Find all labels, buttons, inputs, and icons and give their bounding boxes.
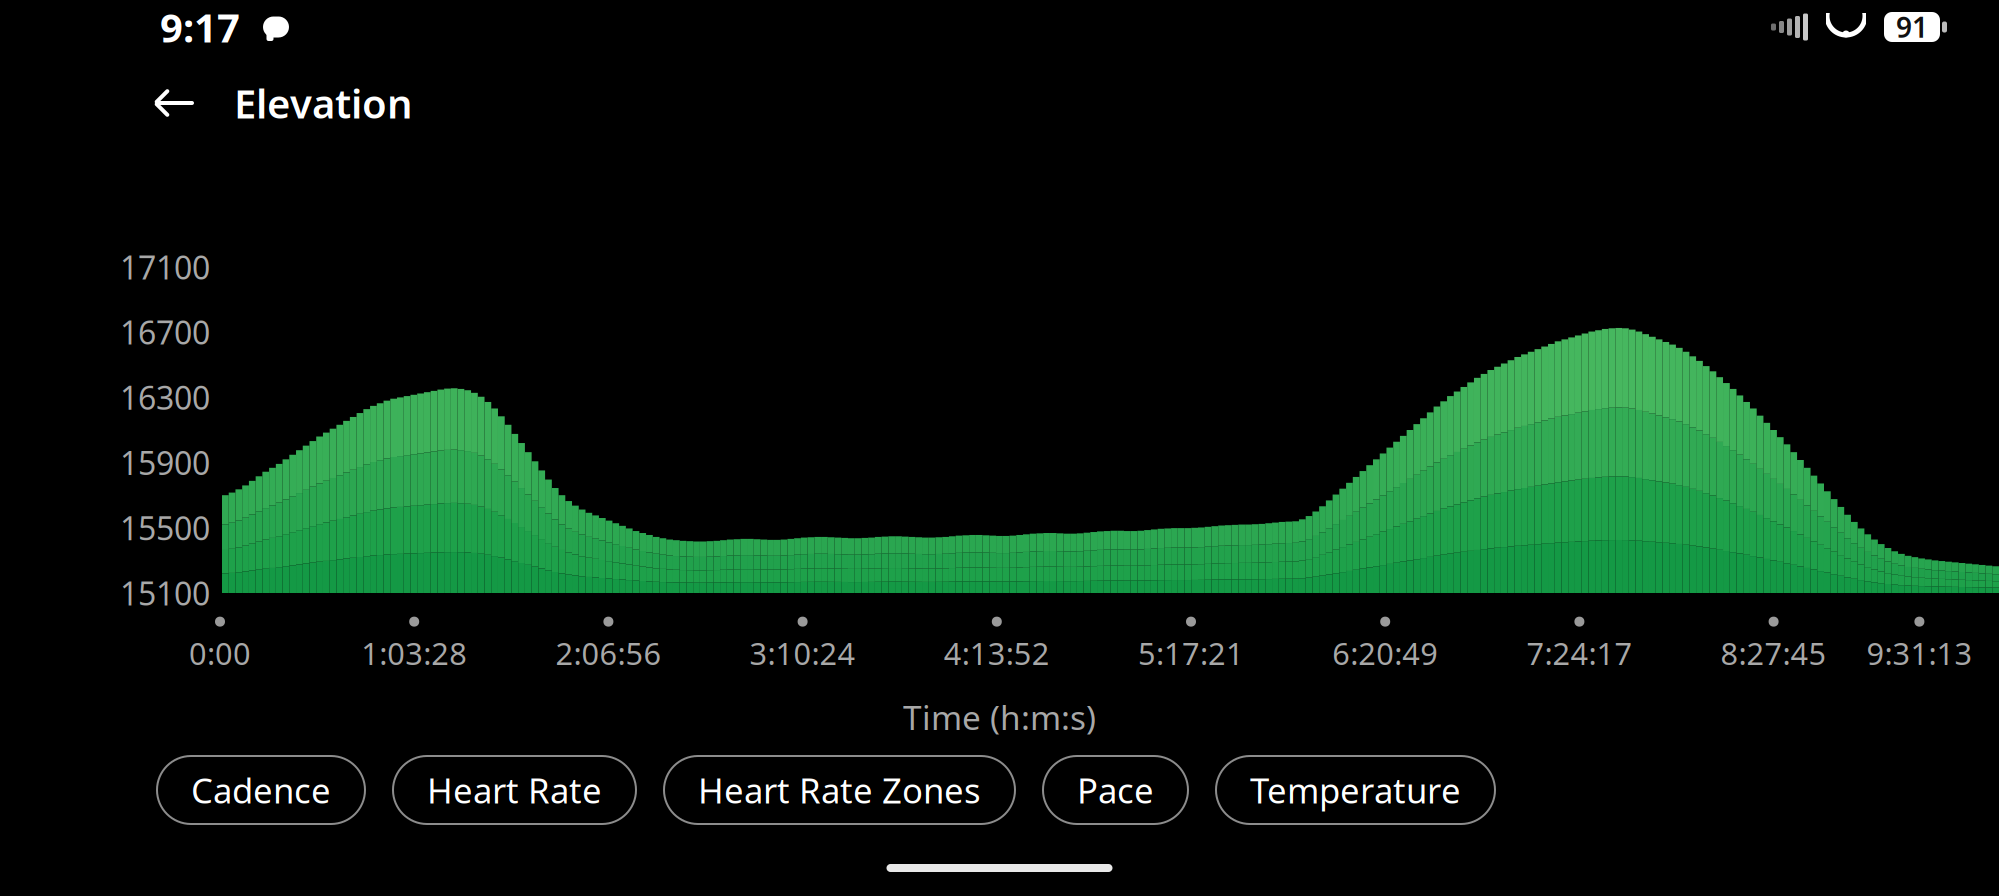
staticText: Time (h:m:s) [903, 695, 1096, 739]
staticText: 7:24:17 [1526, 633, 1632, 673]
button[interactable]: Back [138, 66, 212, 140]
staticText: Elevation [234, 76, 413, 129]
staticText: 0:00 [189, 633, 251, 673]
staticText: 16700 [120, 311, 210, 353]
staticText: 17100 [120, 246, 210, 288]
staticText: Heart Rate [427, 767, 602, 813]
button[interactable]: Temperature [1216, 756, 1495, 824]
button[interactable]: Heart Rate [393, 756, 636, 824]
staticText: 9:17 [160, 0, 240, 53]
staticText: 15900 [120, 441, 210, 484]
staticText: 3:10:24 [750, 633, 856, 673]
staticText: Heart Rate Zones [698, 767, 981, 813]
button[interactable]: Heart Rate Zones [664, 756, 1015, 824]
staticText: 15500 [120, 507, 210, 549]
staticText: 8:27:45 [1721, 633, 1827, 673]
staticText: 9:31:13 [1866, 633, 1972, 673]
staticText: Pace [1077, 767, 1154, 813]
staticText: Cadence [191, 767, 331, 813]
staticText: 4:13:52 [944, 633, 1050, 673]
button[interactable]: Pace [1043, 756, 1188, 824]
staticText: 6:20:49 [1332, 633, 1438, 673]
staticText: Temperature [1250, 767, 1461, 813]
staticText: 91 [1896, 8, 1928, 46]
staticText: 15100 [120, 572, 210, 614]
button[interactable]: Cadence [157, 756, 365, 824]
staticText: 16300 [120, 376, 210, 419]
staticText: 1:03:28 [361, 633, 467, 673]
staticText: 5:17:21 [1138, 633, 1244, 673]
staticText: 2:06:56 [555, 633, 661, 673]
